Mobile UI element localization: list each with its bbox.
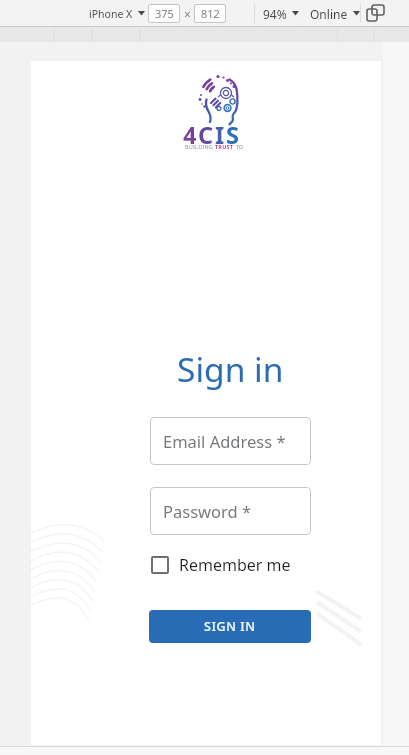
staticText: Email Address * bbox=[163, 430, 286, 452]
button[interactable]: 375 bbox=[148, 4, 180, 23]
staticText: 375 bbox=[155, 6, 174, 21]
staticText: Remember me bbox=[179, 554, 291, 576]
staticText: Online bbox=[310, 6, 348, 22]
staticText: TO bbox=[234, 143, 244, 150]
staticText: S bbox=[226, 119, 241, 151]
staticText: TRUST bbox=[215, 143, 234, 150]
staticText: Sign in bbox=[177, 346, 284, 392]
staticText: iPhone X bbox=[89, 7, 133, 21]
staticText: BUILDING bbox=[185, 143, 215, 150]
button[interactable] bbox=[365, 4, 385, 23]
staticText: × bbox=[184, 6, 191, 22]
button[interactable]: Email Address * bbox=[150, 417, 311, 465]
button[interactable]: Online bbox=[310, 0, 360, 27]
staticText: C bbox=[198, 119, 215, 151]
button[interactable]: 812 bbox=[194, 4, 226, 23]
button[interactable]: 94% bbox=[263, 0, 299, 27]
staticText: Password * bbox=[163, 500, 252, 522]
staticText: SIGN IN bbox=[204, 618, 256, 635]
staticText: 4 bbox=[183, 119, 198, 151]
button[interactable]: Remember me bbox=[151, 554, 291, 576]
button[interactable]: Password * bbox=[150, 487, 311, 535]
staticText: 94% bbox=[263, 6, 287, 22]
button[interactable]: SIGN IN bbox=[149, 610, 311, 643]
staticText: I bbox=[215, 119, 226, 151]
staticText: 812 bbox=[201, 6, 220, 21]
button[interactable]: iPhone X bbox=[89, 0, 145, 27]
